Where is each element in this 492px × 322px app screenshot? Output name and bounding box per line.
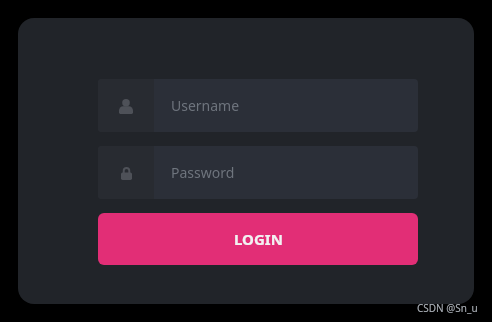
staticText: Username	[171, 96, 240, 115]
staticText: LOGIN	[234, 229, 283, 249]
button[interactable]: Password	[98, 146, 418, 199]
staticText: Password	[171, 163, 235, 182]
staticText: CSDN @Sn_u	[417, 301, 478, 315]
button[interactable]: Username	[98, 79, 418, 132]
other: Username	[98, 79, 154, 132]
other: Password	[98, 146, 154, 199]
button[interactable]: LOGIN	[98, 213, 418, 265]
